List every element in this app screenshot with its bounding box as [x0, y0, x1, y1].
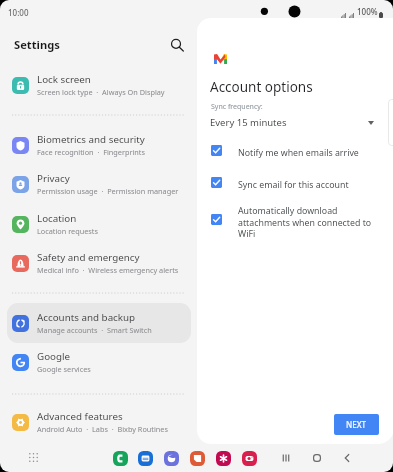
button[interactable]: internet — [164, 451, 179, 466]
staticText: Biometrics and security — [37, 133, 145, 146]
button[interactable]: Sync email for this account — [211, 177, 222, 188]
button[interactable]: Search — [164, 32, 190, 58]
staticText: Location — [37, 212, 77, 225]
staticText: Accounts and backup — [37, 311, 136, 324]
button[interactable]: flower — [216, 451, 231, 466]
staticText: Manage accounts · Smart Switch — [37, 325, 152, 335]
staticText: Face recognition · Fingerprints — [37, 147, 145, 157]
staticText: Google — [37, 350, 71, 363]
button[interactable]: Home — [307, 448, 326, 467]
button[interactable]: Advanced features — [7, 402, 191, 442]
button[interactable]: Privacy — [7, 164, 191, 204]
staticText: Safety and emergency — [37, 251, 140, 264]
staticText: Permission usage · Permission manager — [37, 186, 179, 196]
button[interactable]: Automatically download attachments when … — [211, 214, 222, 225]
button[interactable]: NEXT — [334, 414, 379, 435]
button[interactable]: Accounts and backup — [7, 303, 191, 343]
button[interactable]: notes — [190, 451, 205, 466]
staticText: Screen lock type · Always On Display — [37, 87, 165, 97]
staticText: Advanced features — [37, 410, 123, 423]
staticText: Account options — [210, 78, 313, 96]
staticText: Medical info · Wireless emergency alerts — [37, 265, 179, 275]
staticText: Privacy — [37, 172, 70, 185]
button[interactable]: Lock screen — [7, 65, 191, 105]
staticText: Location requests — [37, 226, 98, 236]
button[interactable]: Notify me when emails arrive — [211, 145, 222, 156]
staticText: Lock screen — [37, 73, 91, 86]
button[interactable]: Apps — [24, 448, 43, 467]
staticText: Sync email for this account — [238, 179, 377, 191]
button[interactable]: Location — [7, 204, 191, 244]
staticText: Every 15 minutes — [210, 116, 287, 129]
button[interactable]: Recents — [276, 448, 295, 467]
staticText: Notify me when emails arrive — [238, 147, 377, 159]
staticText: Sync frequency: — [211, 102, 263, 112]
staticText: Automatically download attachments when … — [238, 205, 377, 239]
button[interactable]: msg — [138, 451, 153, 466]
button[interactable]: Biometrics and security — [7, 125, 191, 165]
button[interactable]: camera — [242, 451, 257, 466]
staticText: Settings — [14, 37, 60, 52]
staticText: 10:00 — [8, 7, 29, 18]
staticText: Android Auto · Labs · Bixby Routines — [37, 424, 168, 434]
button[interactable]: Google — [7, 342, 191, 382]
staticText: 100% — [357, 6, 378, 17]
button[interactable]: Safety and emergency — [7, 243, 191, 283]
staticText: Google services — [37, 364, 91, 374]
button[interactable]: Back — [337, 448, 356, 467]
button[interactable]: phone — [113, 451, 128, 466]
staticText: NEXT — [346, 419, 367, 430]
